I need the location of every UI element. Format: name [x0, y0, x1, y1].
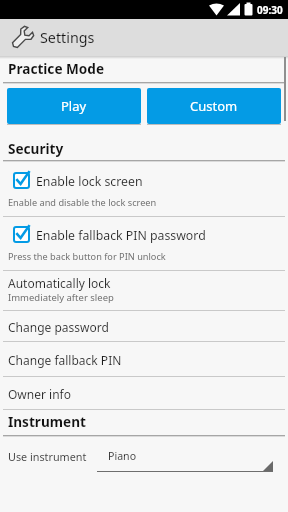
- button[interactable]: [0, 311, 288, 341]
- staticText: Practice Mode: [8, 59, 105, 78]
- staticText: Use instrument: [8, 449, 87, 464]
- staticText: Security: [8, 139, 64, 158]
- staticText: 09:30: [257, 3, 283, 17]
- button[interactable]: [0, 220, 288, 270]
- staticText: Enable and disable the lock screen: [8, 196, 157, 208]
- staticText: Change password: [8, 319, 109, 335]
- staticText: Immediately after sleep: [8, 291, 114, 303]
- button[interactable]: Play: [7, 88, 141, 124]
- staticText: Custom: [190, 97, 238, 115]
- staticText: Enable fallback PIN password: [36, 227, 206, 244]
- staticText: Press the back button for PIN unlock: [8, 250, 166, 262]
- staticText: Piano: [108, 449, 137, 463]
- button[interactable]: [0, 19, 288, 56]
- staticText: Play: [61, 97, 87, 115]
- staticText: Change fallback PIN: [8, 352, 122, 368]
- button[interactable]: [0, 166, 288, 216]
- staticText: Owner info: [8, 386, 71, 402]
- staticText: Settings: [40, 28, 95, 47]
- staticText: Enable lock screen: [36, 173, 143, 190]
- button[interactable]: [97, 444, 275, 472]
- button[interactable]: [0, 377, 288, 409]
- button[interactable]: [0, 271, 288, 310]
- staticText: Instrument: [8, 412, 86, 431]
- staticText: Automatically lock: [8, 275, 111, 291]
- button[interactable]: Custom: [147, 88, 281, 124]
- button[interactable]: [0, 342, 288, 376]
